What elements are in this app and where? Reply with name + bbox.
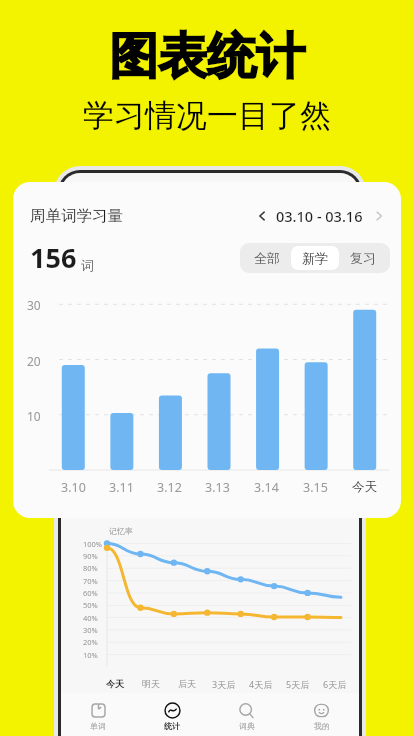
button[interactable]: 词典 xyxy=(209,698,284,735)
staticText: 图表统计 xyxy=(109,26,305,88)
staticText: 3天后 xyxy=(212,678,236,690)
staticText: 30% xyxy=(83,625,98,635)
button[interactable]: 单词 xyxy=(61,698,135,735)
button[interactable]: 复习 xyxy=(339,246,387,270)
staticText: 周单词学习量 xyxy=(30,206,123,226)
staticText: 20% xyxy=(83,637,98,647)
staticText: 3.14 xyxy=(254,479,279,496)
staticText: 单词 xyxy=(90,721,106,731)
staticText: 新学 xyxy=(302,250,328,266)
staticText: 3.12 xyxy=(157,479,182,496)
staticText: 80% xyxy=(83,563,98,573)
staticText: 03.10 - 03.16 xyxy=(276,206,363,226)
staticText: 词典 xyxy=(239,721,255,731)
staticText: 10 xyxy=(27,408,41,424)
staticText: 3.15 xyxy=(303,479,328,496)
staticText: 3.10 xyxy=(61,479,86,496)
button[interactable]: 新学 xyxy=(291,246,339,270)
staticText: 词 xyxy=(81,257,94,273)
staticText: 复习 xyxy=(350,250,376,266)
staticText: 全部 xyxy=(254,250,280,266)
staticText: 我的 xyxy=(314,721,330,731)
staticText: 30 xyxy=(27,297,41,313)
staticText: 50% xyxy=(83,600,98,610)
staticText: 10% xyxy=(83,650,98,660)
staticText: 学习情况一目了然 xyxy=(83,96,331,135)
staticText: 20 xyxy=(27,353,41,369)
staticText: 3.13 xyxy=(205,479,230,496)
staticText: 100% xyxy=(83,539,103,549)
staticText: 今天 xyxy=(106,678,124,689)
staticText: 6天后 xyxy=(323,678,347,690)
staticText: 统计 xyxy=(164,721,180,731)
button[interactable]: 我的 xyxy=(284,698,359,735)
staticText: 记忆率 xyxy=(109,526,133,536)
staticText: 40% xyxy=(83,613,98,623)
staticText: 4天后 xyxy=(249,678,273,690)
button[interactable]: Previous week xyxy=(251,205,273,227)
staticText: 后天 xyxy=(178,678,196,689)
staticText: 90% xyxy=(83,551,98,561)
staticText: 156 xyxy=(30,239,77,276)
staticText: 今天 xyxy=(352,479,377,495)
staticText: 70% xyxy=(83,576,98,586)
button[interactable]: 统计 xyxy=(135,698,209,735)
staticText: 明天 xyxy=(142,678,160,689)
staticText: 3.11 xyxy=(109,479,134,496)
staticText: 5天后 xyxy=(286,678,310,690)
button[interactable]: 全部 xyxy=(243,246,291,270)
staticText: 60% xyxy=(83,588,98,598)
button[interactable]: Next week xyxy=(368,205,390,227)
